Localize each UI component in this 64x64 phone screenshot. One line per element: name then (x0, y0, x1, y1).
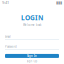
staticText: Password (5, 45, 17, 48)
button[interactable]: Sign Up (26, 58, 37, 63)
button[interactable]: Sign In (5, 54, 59, 58)
staticText: Sign Up (26, 59, 37, 63)
staticText: 9:41 (2, 0, 9, 5)
staticText: ▮▮▮ (56, 0, 62, 5)
staticText: Sign In (27, 54, 37, 58)
staticText: Email (5, 35, 11, 38)
staticText: Welcome back (23, 23, 41, 27)
staticText: LOGIN (21, 13, 43, 22)
